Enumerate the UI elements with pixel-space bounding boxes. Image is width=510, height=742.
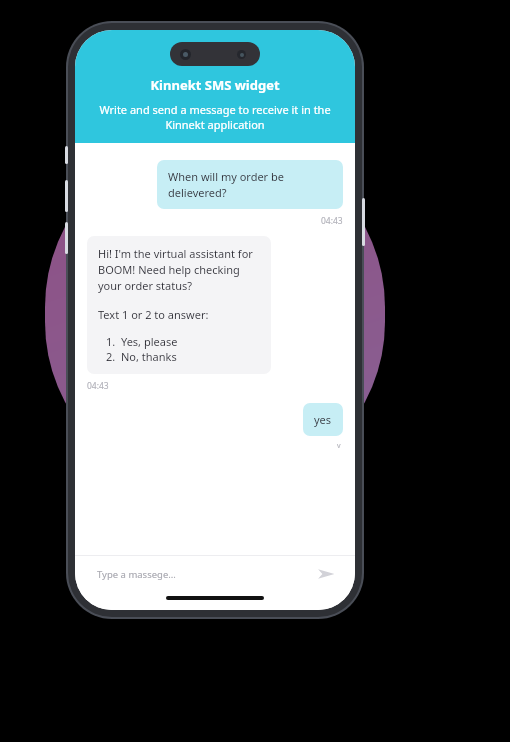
button[interactable]: Send	[315, 563, 337, 585]
staticText: 04:43	[87, 380, 109, 392]
staticText: Kinnekt SMS widget	[150, 76, 280, 94]
staticText: Type a massege...	[97, 568, 176, 581]
staticText: 04:43	[321, 215, 343, 227]
staticText: Hi! I'm the virtual assistant for BOOM! …	[98, 246, 260, 293]
staticText: 1. Yes, please	[106, 334, 178, 349]
staticText: Write and send a message to receive it i…	[89, 102, 341, 132]
button[interactable]: When will my order be delievered?	[157, 160, 343, 209]
button[interactable]: Type a massege...	[97, 568, 315, 581]
staticText: yes	[314, 412, 332, 427]
staticText: v	[337, 441, 341, 451]
button[interactable]: yes	[303, 403, 343, 436]
staticText: When will my order be delievered?	[168, 169, 332, 200]
staticText: Text 1 or 2 to answer:	[98, 307, 209, 322]
button[interactable]: Hi! I'm the virtual assistant for BOOM! …	[87, 236, 271, 374]
staticText: 2. No, thanks	[106, 349, 177, 364]
